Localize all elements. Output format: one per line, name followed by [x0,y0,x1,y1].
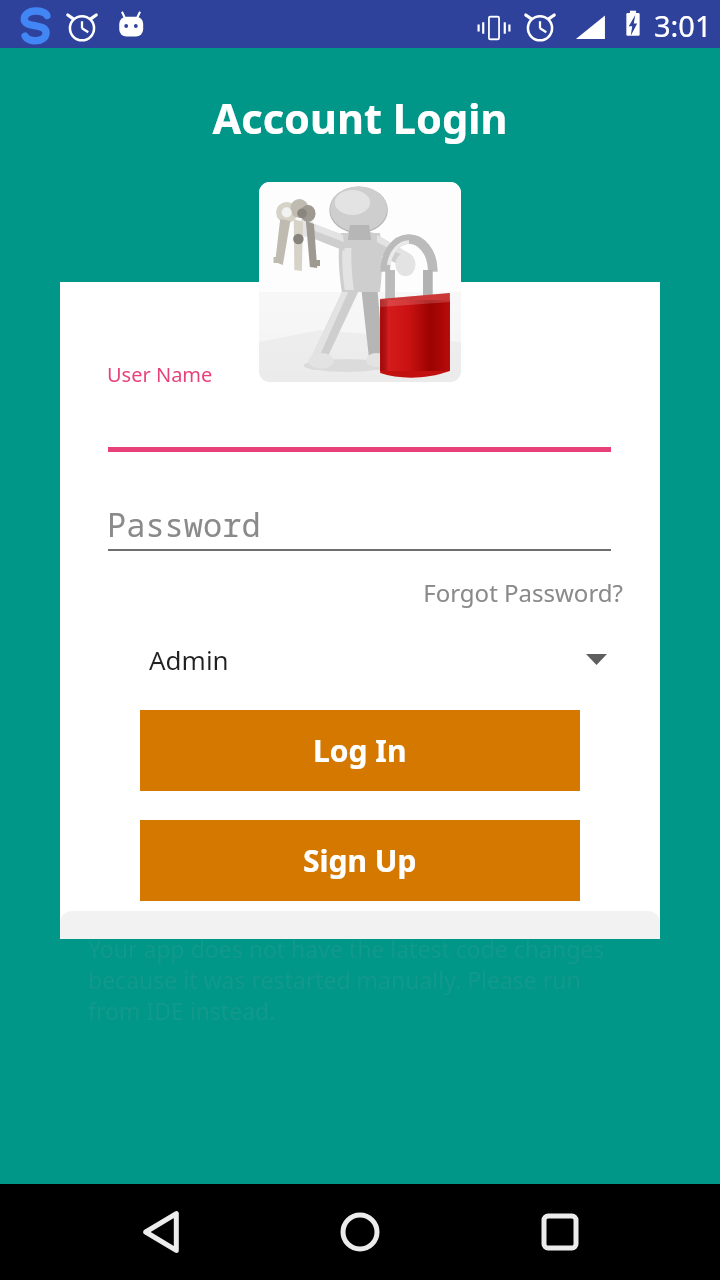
button[interactable]: Password field [108,498,611,551]
staticText: User Name [107,361,213,388]
staticText: from IDE instead. [88,995,276,1026]
staticText: Password [107,503,261,547]
button[interactable]: User Name field [108,356,611,452]
staticText: Log In [313,730,407,771]
staticText: Admin [149,642,229,677]
staticText: Forgot Password? [400,576,623,609]
button[interactable]: Recent apps [500,1189,620,1275]
button[interactable]: Back [101,1189,221,1275]
staticText: Account Login [0,90,720,147]
button[interactable]: Forgot Password? [400,576,623,612]
staticText: Your app does not have the latest code c… [88,933,605,964]
staticText: because it was restarted manually. Pleas… [88,964,581,995]
staticText: 3:01 [654,6,712,45]
button[interactable]: Home [300,1189,420,1275]
button[interactable]: Log In [140,710,580,791]
button[interactable]: Admin [149,634,607,684]
button[interactable]: Sign Up [140,820,580,901]
staticText: Sign Up [303,840,417,881]
